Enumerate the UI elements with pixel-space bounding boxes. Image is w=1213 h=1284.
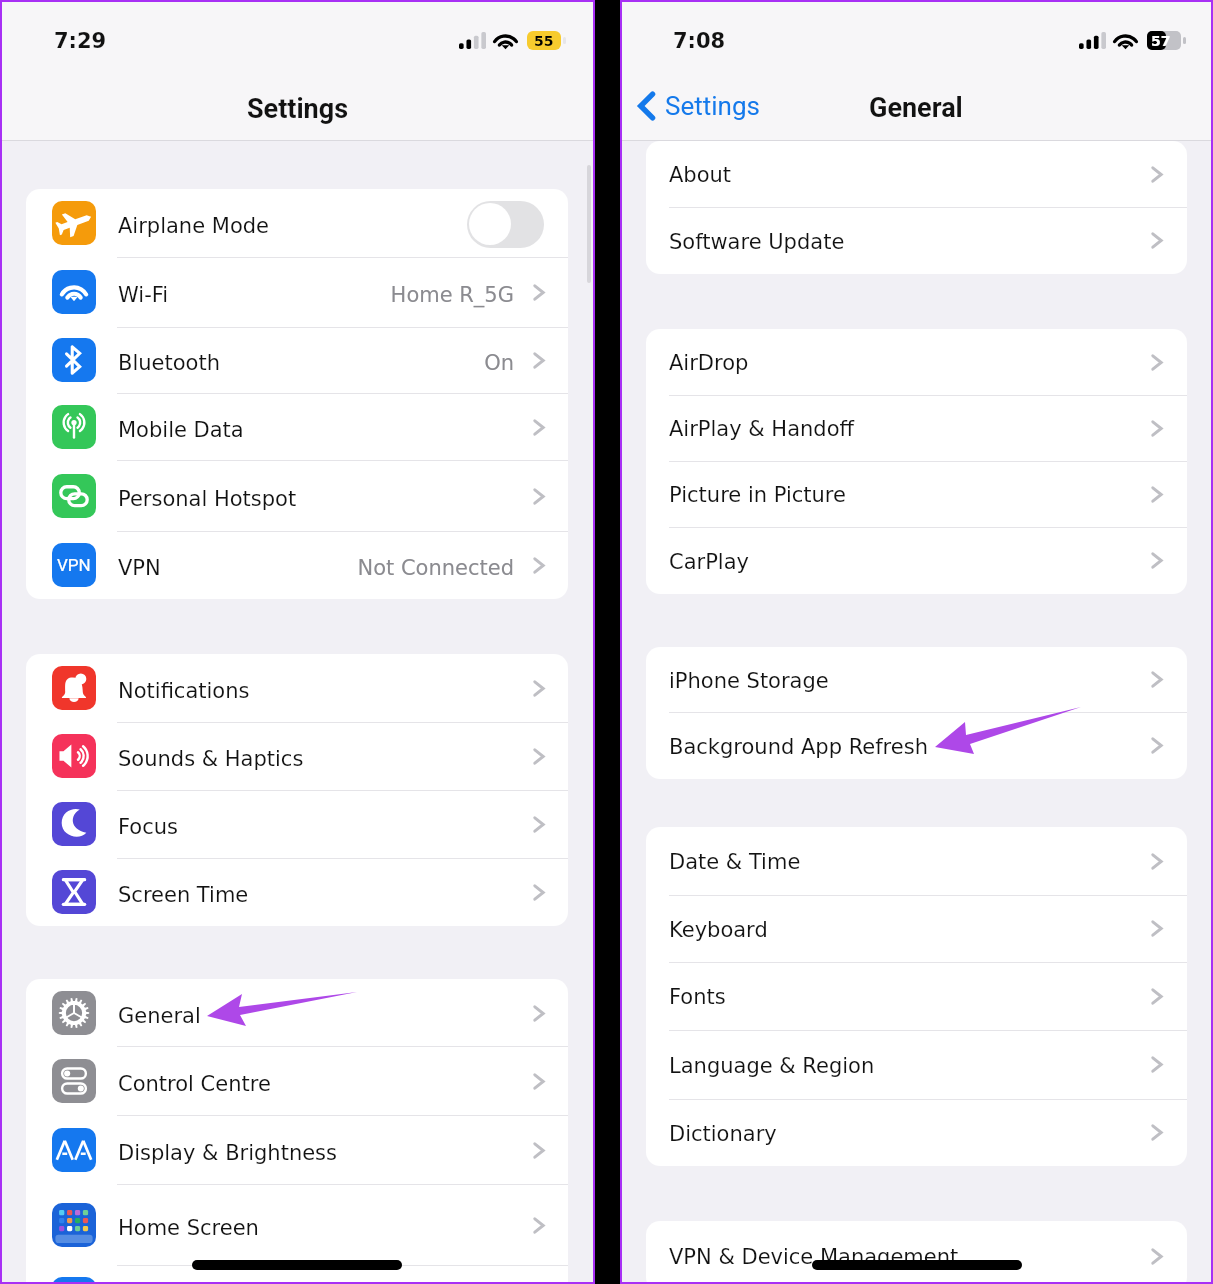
staticText: Not Connected [26, 556, 514, 580]
staticText: General [118, 1004, 201, 1028]
staticText: iPhone Storage [669, 669, 829, 693]
staticText: Personal Hotspot [118, 487, 297, 511]
button[interactable]: Picture in Picture [646, 461, 1187, 527]
staticText: Display & Brightness [118, 1141, 337, 1165]
button[interactable]: Personal Hotspot [26, 460, 568, 531]
staticText: 7:29 [54, 29, 107, 53]
button[interactable]: About [646, 141, 1187, 207]
staticText: VPN [118, 556, 161, 580]
staticText: Picture in Picture [669, 483, 846, 507]
button[interactable]: Home Screen [26, 1184, 568, 1265]
staticText: Notifications [118, 679, 250, 703]
button[interactable]: Back to Settings [635, 90, 760, 122]
button[interactable]: VPN & Device Management [646, 1221, 1187, 1282]
button[interactable]: Dictionary [646, 1099, 1187, 1166]
staticText: AirDrop [669, 351, 749, 375]
button[interactable]: CarPlay [646, 527, 1187, 594]
staticText: General [869, 92, 963, 124]
button[interactable]: AirPlay & Handoff [646, 395, 1187, 461]
staticText: About [669, 163, 732, 187]
staticText: Software Update [669, 230, 845, 254]
button[interactable]: Airplane Mode [26, 189, 568, 257]
button[interactable]: AirDrop [646, 329, 1187, 395]
button[interactable]: Accessibility [26, 1265, 568, 1282]
staticText: Dictionary [669, 1122, 777, 1146]
button[interactable]: Date & Time [646, 827, 1187, 895]
button[interactable]: VPN [26, 531, 568, 599]
button[interactable]: Control Centre [26, 1046, 568, 1115]
button[interactable]: Fonts [646, 962, 1187, 1030]
button[interactable]: Sounds & Haptics [26, 722, 568, 790]
staticText: Mobile Data [118, 418, 244, 442]
staticText: Airplane Mode [118, 214, 269, 238]
staticText: Screen Time [118, 883, 249, 907]
button[interactable]: iPhone Storage [646, 647, 1187, 712]
staticText: Fonts [669, 985, 726, 1009]
staticText: Settings [665, 91, 760, 121]
button[interactable]: Keyboard [646, 895, 1187, 962]
staticText: Language & Region [669, 1054, 875, 1078]
button[interactable]: Screen Time [26, 858, 568, 926]
staticText: Date & Time [669, 850, 801, 874]
button[interactable]: Airplane Mode toggle [467, 201, 544, 248]
button[interactable]: Software Update [646, 207, 1187, 274]
button[interactable]: Display & Brightness [26, 1115, 568, 1184]
staticText: CarPlay [669, 550, 749, 574]
button[interactable]: Language & Region [646, 1030, 1187, 1099]
staticText: Sounds & Haptics [118, 747, 304, 771]
button[interactable]: Notifications [26, 654, 568, 722]
button[interactable]: Bluetooth [26, 327, 568, 393]
staticText: 57 [1151, 33, 1171, 49]
staticText: Keyboard [669, 918, 768, 942]
staticText: Home R_5G [26, 283, 514, 307]
staticText: Focus [118, 815, 178, 839]
staticText: 55 [534, 33, 554, 49]
staticText: VPN [57, 555, 91, 575]
staticText: AirPlay & Handoff [669, 417, 854, 441]
staticText: Home Screen [118, 1216, 259, 1240]
staticText: Wi-Fi [118, 283, 169, 307]
staticText: 7:08 [673, 29, 726, 53]
staticText: Control Centre [118, 1072, 271, 1096]
staticText: Bluetooth [118, 351, 220, 375]
button[interactable]: Focus [26, 790, 568, 858]
staticText: On [26, 351, 514, 375]
staticText: VPN & Device Management [669, 1245, 959, 1269]
staticText: Settings [247, 93, 349, 125]
button[interactable]: Wi-Fi [26, 257, 568, 327]
button[interactable]: Background App Refresh [646, 712, 1187, 779]
button[interactable]: Mobile Data [26, 393, 568, 460]
staticText: Background App Refresh [669, 735, 928, 759]
button[interactable]: General [26, 979, 568, 1046]
